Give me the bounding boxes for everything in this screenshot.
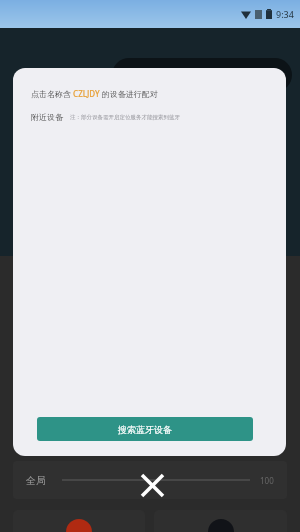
button[interactable] [154, 510, 287, 532]
staticText: 点击名称含 CZLJDY 的设备进行配对 [31, 88, 158, 99]
button[interactable]: Close [136, 469, 169, 502]
staticText: 搜索蓝牙设备 [118, 424, 172, 435]
button[interactable]: 搜索蓝牙设备 [37, 417, 253, 441]
staticText: 9:34 [276, 8, 294, 20]
staticText: 100 [260, 475, 274, 486]
button[interactable] [13, 510, 145, 532]
staticText: 附近设备 [31, 112, 63, 122]
staticText: 全局 [26, 474, 46, 487]
staticText: 注：部分设备需开启定位服务才能搜索到蓝牙 [70, 114, 180, 121]
